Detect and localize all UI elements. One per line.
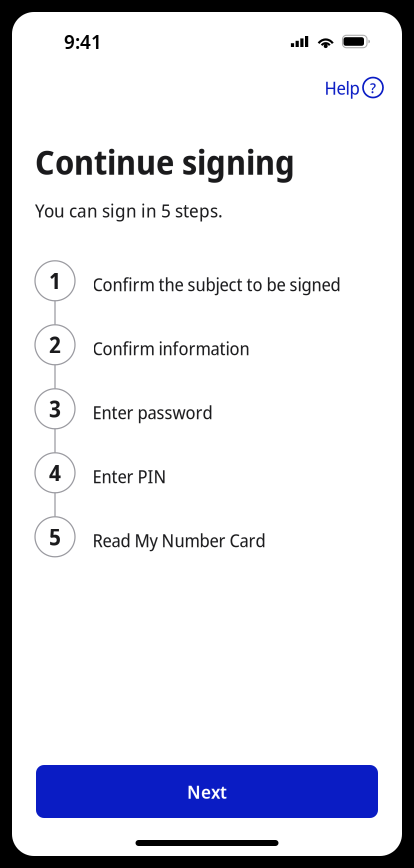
staticText: Help xyxy=(324,75,359,100)
staticText: 9:41 xyxy=(64,28,102,55)
button[interactable]: Help xyxy=(316,66,391,108)
staticText: Confirm information xyxy=(92,336,249,361)
staticText: 1 xyxy=(49,265,61,296)
button[interactable]: Next xyxy=(36,765,378,818)
staticText: Confirm the subject to be signed xyxy=(92,272,340,297)
staticText: ? xyxy=(370,77,376,97)
staticText: Next xyxy=(187,779,227,804)
staticText: 3 xyxy=(49,393,61,424)
staticText: Continue signing xyxy=(35,138,295,185)
staticText: You can sign in 5 steps. xyxy=(35,198,223,223)
staticText: 5 xyxy=(49,521,61,552)
staticText: Read My Number Card xyxy=(92,528,265,553)
staticText: 4 xyxy=(49,457,61,488)
staticText: 2 xyxy=(49,329,61,360)
staticText: Enter PIN xyxy=(92,464,166,489)
staticText: Enter password xyxy=(92,400,212,425)
